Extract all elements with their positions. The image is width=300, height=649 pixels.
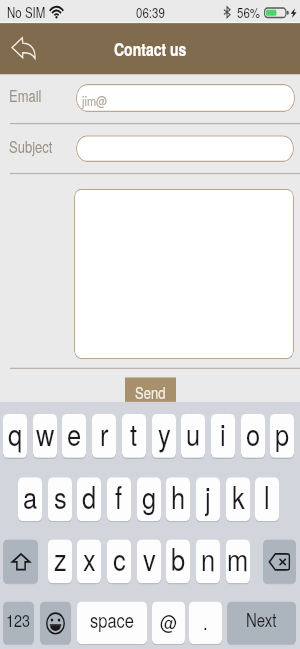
staticText: h	[171, 477, 186, 517]
button[interactable]: Send	[125, 377, 176, 407]
staticText: j	[205, 477, 211, 517]
staticText: p	[275, 414, 290, 454]
staticText: jim@	[82, 90, 108, 110]
staticText: s	[54, 477, 67, 517]
staticText: No SIM	[7, 2, 46, 22]
button[interactable]: @	[152, 601, 185, 644]
button[interactable]: g	[137, 477, 161, 521]
staticText: m	[227, 539, 249, 580]
staticText: f	[115, 477, 123, 517]
staticText: n	[201, 539, 216, 580]
staticText: a	[23, 477, 38, 517]
staticText: 56%	[237, 2, 261, 22]
button[interactable]: Back	[8, 32, 38, 63]
button[interactable]: d	[77, 477, 101, 521]
staticText: k	[232, 477, 245, 517]
staticText: Contact us	[114, 36, 187, 61]
staticText: @	[160, 605, 178, 634]
staticText: g	[142, 477, 157, 517]
button[interactable]: jim@	[76, 84, 295, 112]
button[interactable]: i	[211, 414, 235, 458]
button[interactable]: l	[255, 477, 279, 521]
button[interactable]: .	[189, 601, 222, 644]
button[interactable]	[74, 189, 294, 359]
staticText: q	[8, 414, 23, 454]
button[interactable]: b	[166, 539, 190, 583]
staticText: w	[36, 414, 55, 454]
staticText: Subject	[9, 135, 53, 158]
button[interactable]: j	[196, 477, 220, 521]
button[interactable]: u	[181, 414, 205, 458]
staticText: b	[171, 539, 186, 580]
staticText: u	[186, 414, 201, 454]
button[interactable]: k	[226, 477, 250, 521]
staticText: z	[54, 539, 67, 580]
button[interactable]: a	[18, 477, 42, 521]
button[interactable]: 123	[3, 601, 34, 644]
button[interactable]: c	[107, 539, 131, 583]
staticText: y	[158, 414, 171, 454]
button[interactable]: p	[270, 414, 294, 458]
button[interactable]: f	[107, 477, 131, 521]
button[interactable]: Next	[227, 601, 296, 644]
button[interactable]: Shift	[3, 539, 38, 583]
button[interactable]	[76, 135, 294, 162]
button[interactable]: z	[48, 539, 72, 583]
staticText: 123	[6, 606, 31, 632]
staticText: o	[246, 414, 261, 454]
staticText: space	[90, 605, 135, 634]
button[interactable]: space	[77, 601, 147, 644]
staticText: e	[67, 414, 82, 454]
button[interactable]: y	[152, 414, 176, 458]
button[interactable]: o	[241, 414, 265, 458]
staticText: .	[203, 605, 208, 634]
button[interactable]: w	[33, 414, 57, 458]
button[interactable]: m	[226, 539, 250, 583]
button[interactable]: s	[48, 477, 72, 521]
button[interactable]: h	[166, 477, 190, 521]
staticText: x	[83, 539, 96, 580]
button[interactable]: n	[196, 539, 220, 583]
button[interactable]: Emoji	[40, 601, 71, 644]
staticText: Send	[135, 381, 166, 404]
staticText: i	[220, 414, 226, 454]
staticText: c	[113, 539, 126, 580]
button[interactable]: v	[137, 539, 161, 583]
staticText: v	[143, 539, 156, 580]
staticText: Email	[9, 84, 42, 107]
staticText: d	[82, 477, 97, 517]
button[interactable]: r	[92, 414, 116, 458]
button[interactable]: x	[77, 539, 101, 583]
button[interactable]: Backspace	[263, 539, 296, 583]
staticText: l	[264, 477, 270, 517]
button[interactable]: q	[3, 414, 27, 458]
staticText: t	[130, 414, 138, 454]
staticText: 06:39	[136, 2, 165, 22]
button[interactable]: t	[122, 414, 146, 458]
staticText: Next	[246, 606, 277, 632]
staticText: r	[100, 414, 109, 454]
button[interactable]: e	[62, 414, 86, 458]
